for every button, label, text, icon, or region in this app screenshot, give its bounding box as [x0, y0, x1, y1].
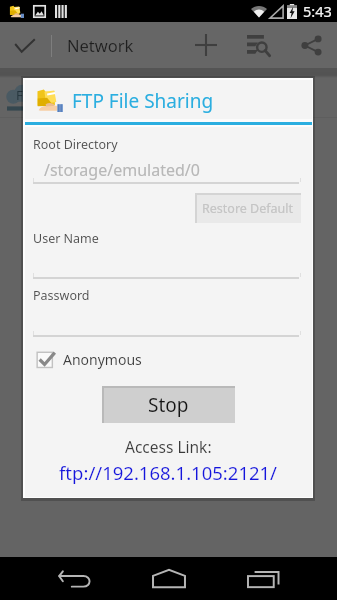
button[interactable]: Home: [122, 557, 215, 600]
staticText: Password: [33, 287, 90, 304]
button[interactable]: Search: [236, 22, 280, 68]
staticText: User Name: [33, 230, 99, 247]
staticText: Stop: [148, 392, 189, 418]
staticText: Root Directory: [33, 136, 118, 153]
staticText: Restore Default: [202, 200, 294, 217]
staticText: Network: [67, 34, 134, 56]
staticText: FT: [16, 86, 30, 104]
staticText: /storage/emulated/0: [44, 159, 200, 181]
button[interactable]: Back: [28, 557, 122, 600]
staticText: FTP File Sharing: [72, 88, 214, 114]
button[interactable]: Done: [0, 22, 50, 68]
staticText: 5:43: [303, 1, 332, 21]
button[interactable]: Share: [289, 22, 333, 68]
button[interactable]: ftp://192.168.1.105:2121/: [59, 460, 278, 485]
staticText: Anonymous: [63, 350, 142, 369]
button[interactable]: Anonymous: [36, 348, 142, 370]
button[interactable]: Restore Default: [195, 193, 301, 223]
staticText: Access Link:: [125, 436, 212, 457]
button[interactable]: Recents: [216, 557, 310, 600]
button[interactable]: Stop: [102, 386, 235, 423]
button[interactable]: Add: [184, 22, 228, 68]
